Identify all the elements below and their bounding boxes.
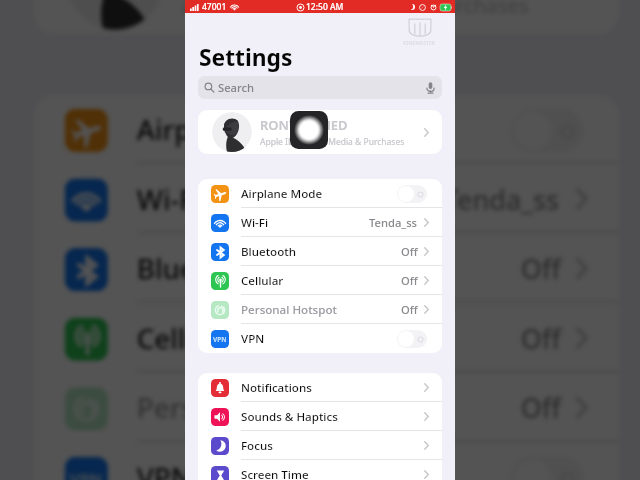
staticText: 12:50 AM xyxy=(306,1,344,13)
staticText: Notifications xyxy=(241,380,312,396)
button[interactable]: Airplane Mode toggle, off xyxy=(397,185,427,203)
staticText: Focus xyxy=(241,438,273,454)
button[interactable]: Voice search xyxy=(423,79,437,96)
staticText: RONY AHMED xyxy=(260,116,348,134)
staticText: Search xyxy=(218,80,254,95)
button[interactable]: RONY AHMED xyxy=(33,0,619,34)
staticText: Cellular xyxy=(241,273,284,289)
staticText: Bluetooth xyxy=(241,244,296,260)
staticText: Wi-Fi xyxy=(241,215,269,231)
staticText: Off xyxy=(401,302,418,317)
staticText: Sounds & Haptics xyxy=(241,409,338,425)
staticText: VPN xyxy=(213,335,227,344)
button[interactable]: Cellular xyxy=(33,303,619,373)
button[interactable]: Personal Hotspot xyxy=(33,373,619,442)
staticText: Tenda_ss xyxy=(369,215,418,230)
staticText: KINEMASTER xyxy=(403,40,436,47)
staticText: Wi-Fi xyxy=(137,181,204,219)
button[interactable]: VPN toggle, off xyxy=(397,330,427,348)
button[interactable]: RONY AHMED xyxy=(198,110,442,154)
button[interactable]: Bluetooth xyxy=(33,234,619,303)
button[interactable]: Screen Time xyxy=(198,460,442,480)
staticText: Bluetooth xyxy=(137,250,269,289)
button[interactable]: VPN xyxy=(33,442,619,480)
staticText: Apple ID, iCloud, Media & Purchases xyxy=(182,0,530,20)
staticText: Off xyxy=(401,244,418,259)
staticText: Off xyxy=(521,250,561,286)
staticText: Personal Hotspot xyxy=(241,302,337,318)
button[interactable]: Airplane Mode xyxy=(33,94,619,164)
staticText: Apple ID, iCloud, Media & Purchases xyxy=(260,136,405,148)
staticText: Settings xyxy=(199,42,293,73)
staticText: Personal Hotspot xyxy=(137,390,367,428)
staticText: Off xyxy=(401,273,418,288)
button[interactable]: Search xyxy=(198,76,442,99)
staticText: Off xyxy=(521,320,561,356)
button[interactable]: Wi-Fi xyxy=(33,164,619,234)
staticText: Tenda_ss xyxy=(444,181,561,217)
staticText: Screen Time xyxy=(241,467,309,480)
button[interactable]: Focus xyxy=(198,431,442,460)
staticText: 47001 xyxy=(202,1,227,13)
staticText: VPN xyxy=(137,459,194,480)
button[interactable]: Bluetooth xyxy=(198,237,442,266)
button[interactable]: Airplane Mode xyxy=(198,179,442,208)
button[interactable]: VPN xyxy=(198,324,442,353)
staticText: Airplane Mode xyxy=(241,186,323,202)
staticText: Off xyxy=(521,390,561,426)
button[interactable]: Wi-Fi xyxy=(198,208,442,237)
staticText: VPN xyxy=(69,469,103,480)
staticText: Cellular xyxy=(137,320,240,358)
staticText: Airplane Mode xyxy=(137,111,333,150)
button[interactable]: Sounds & Haptics xyxy=(198,402,442,431)
button[interactable]: Cellular xyxy=(198,266,442,295)
button[interactable]: Personal Hotspot xyxy=(198,295,442,324)
button[interactable]: Notifications xyxy=(198,373,442,402)
staticText: VPN xyxy=(241,331,265,347)
